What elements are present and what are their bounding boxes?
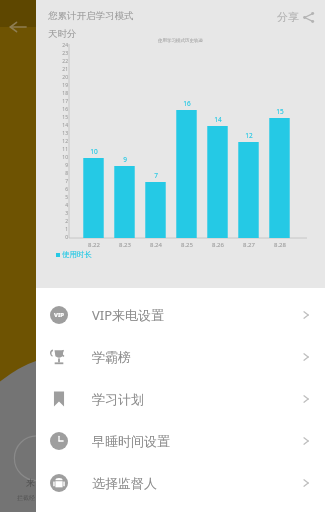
staticText: 5 — [50, 194, 68, 201]
staticText: 10 — [50, 154, 68, 161]
button[interactable]: Back — [0, 14, 36, 40]
staticText: 您累计开启学习模式 — [48, 10, 134, 22]
staticText: 8.24 — [142, 241, 170, 249]
staticText: 24 — [50, 42, 68, 49]
staticText: 8.22 — [80, 241, 108, 249]
staticText: 11 — [50, 146, 68, 153]
staticText: 9 — [111, 155, 139, 164]
staticText: 学霸榜 — [92, 349, 131, 365]
staticText: 4 — [50, 202, 68, 209]
staticText: 19 — [50, 82, 68, 89]
staticText: 15 — [50, 114, 68, 121]
staticText: 1 — [50, 226, 68, 233]
button[interactable]: 选择监督人 — [36, 462, 325, 504]
staticText: 选择监督人 — [92, 475, 157, 491]
button[interactable]: 早睡时间设置 — [36, 420, 325, 462]
staticText: 21 — [50, 66, 68, 73]
staticText: 13 — [50, 130, 68, 137]
staticText: 16 — [50, 106, 68, 113]
staticText: VIP来电设置 — [92, 306, 165, 324]
staticText: 使用学习模式历史轨迹 — [158, 38, 203, 44]
staticText: 7 — [142, 171, 170, 180]
staticText: 14 — [204, 115, 232, 124]
staticText: 天时分 — [48, 28, 77, 40]
staticText: 拦截经 — [17, 494, 35, 502]
button[interactable]: 学习计划 — [36, 378, 325, 420]
staticText: VIP — [54, 311, 64, 319]
staticText: 8.23 — [111, 241, 139, 249]
staticText: 6 — [50, 186, 68, 193]
staticText: 20 — [50, 74, 68, 81]
staticText: 0 — [50, 234, 68, 241]
staticText: 使用时长 — [62, 250, 92, 259]
staticText: 早睡时间设置 — [92, 433, 170, 449]
staticText: 2 — [50, 218, 68, 225]
staticText: 15 — [266, 107, 294, 116]
staticText: 分享 — [277, 10, 299, 24]
staticText: 18 — [50, 90, 68, 97]
staticText: 17 — [50, 98, 68, 105]
staticText: 8.25 — [173, 241, 201, 249]
staticText: 3 — [50, 210, 68, 217]
button[interactable]: 分享 — [275, 8, 317, 26]
staticText: 学习计划 — [92, 391, 144, 407]
staticText: 16 — [173, 99, 201, 108]
staticText: 14 — [50, 122, 68, 129]
staticText: 来 — [26, 477, 35, 488]
staticText: 12 — [50, 138, 68, 145]
staticText: 9 — [50, 162, 68, 169]
staticText: 22 — [50, 58, 68, 65]
staticText: 8 — [50, 170, 68, 177]
staticText: 8.26 — [204, 241, 232, 249]
staticText: 12 — [235, 131, 263, 140]
staticText: 8.27 — [235, 241, 263, 249]
button[interactable]: 学霸榜 — [36, 336, 325, 378]
staticText: 8.28 — [266, 241, 294, 249]
staticText: 10 — [80, 147, 108, 156]
staticText: 7 — [50, 178, 68, 185]
staticText: 23 — [50, 50, 68, 57]
button[interactable]: VIP — [36, 294, 325, 336]
